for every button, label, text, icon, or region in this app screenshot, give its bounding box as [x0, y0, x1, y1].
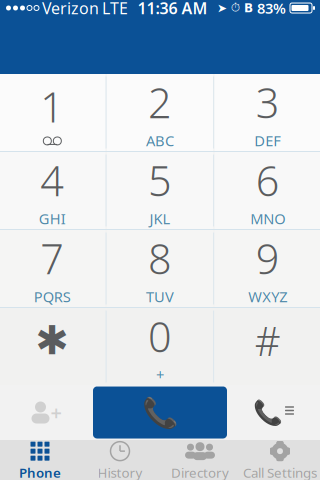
staticText: Call Settings: [243, 464, 317, 480]
button[interactable]: History: [80, 440, 160, 480]
button[interactable]: 0: [107, 308, 213, 385]
staticText: ✱: [35, 318, 69, 363]
staticText: Verizon: [42, 0, 99, 19]
staticText: 11:36 AM: [137, 0, 207, 19]
staticText: 7: [40, 231, 64, 286]
staticText: +: [156, 365, 164, 384]
staticText: LTE: [102, 0, 128, 19]
staticText: WXYZ: [248, 287, 287, 306]
staticText: PQRS: [34, 287, 71, 306]
staticText: 0: [148, 309, 172, 364]
staticText: JKL: [149, 209, 170, 228]
staticText: 5: [148, 153, 172, 208]
button[interactable]: 1: [0, 74, 106, 151]
button[interactable]: #: [214, 308, 320, 385]
button[interactable]: Phone: [0, 440, 80, 480]
staticText: Phone: [19, 464, 61, 480]
staticText: History: [97, 464, 142, 480]
staticText: Directory: [171, 464, 229, 480]
staticText: ABC: [146, 131, 174, 150]
staticText: TUV: [146, 287, 174, 306]
staticText: 2: [148, 75, 172, 130]
staticText: 📞: [141, 396, 178, 429]
button[interactable]: 9: [214, 230, 320, 307]
staticText: MNO: [250, 209, 285, 228]
staticText: 83%: [257, 0, 286, 18]
button[interactable]: 6: [214, 152, 320, 229]
staticText: DEF: [254, 131, 281, 150]
staticText: 1: [40, 79, 64, 134]
button[interactable]: 8: [107, 230, 213, 307]
button[interactable]: Add Contact: [0, 385, 93, 440]
staticText: 9: [256, 231, 280, 286]
staticText: 3: [256, 75, 280, 130]
button[interactable]: 5: [107, 152, 213, 229]
button[interactable]: Directory: [160, 440, 240, 480]
button[interactable]: Call: [93, 386, 227, 438]
button[interactable]: Recent Calls: [227, 385, 320, 440]
button[interactable]: 4: [0, 152, 106, 229]
button[interactable]: ✱: [0, 308, 106, 385]
button[interactable]: 2: [107, 74, 213, 151]
staticText: 8: [148, 231, 172, 286]
staticText: +: [50, 399, 61, 426]
staticText: 6: [256, 153, 280, 208]
button[interactable]: Call Settings: [240, 440, 320, 480]
staticText: ⏱: [231, 2, 240, 14]
button[interactable]: 3: [214, 74, 320, 151]
staticText: 4: [40, 153, 64, 208]
staticText: 𝗕: [244, 1, 253, 15]
button[interactable]: 7: [0, 230, 106, 307]
staticText: ➤: [217, 1, 227, 15]
staticText: #: [255, 314, 281, 367]
staticText: GHI: [39, 209, 66, 228]
staticText: 📞: [253, 399, 283, 426]
